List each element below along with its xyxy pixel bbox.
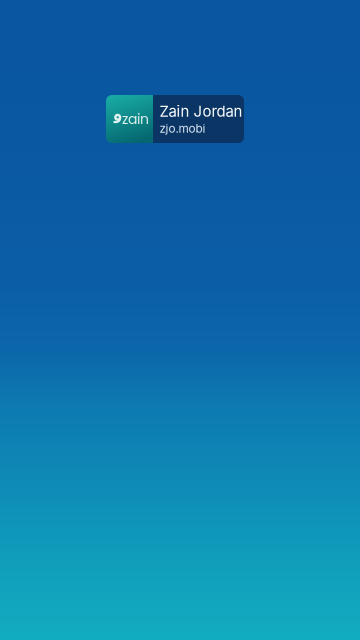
staticText: zjo.mobi bbox=[159, 121, 205, 136]
button[interactable]: zain bbox=[106, 95, 244, 143]
staticText: zain bbox=[122, 109, 149, 129]
staticText: Zain Jordan bbox=[159, 102, 242, 120]
